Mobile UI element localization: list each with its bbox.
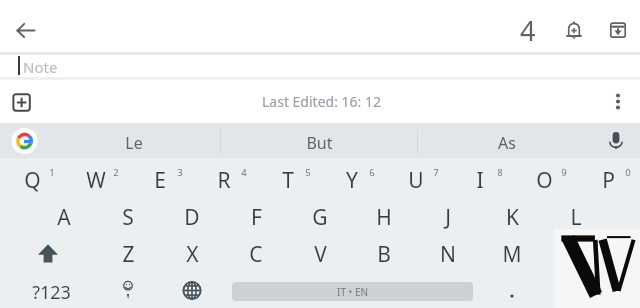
staticText: Y	[346, 166, 358, 195]
button[interactable]: Voice input	[598, 124, 634, 157]
button[interactable]: Backspace	[544, 234, 640, 271]
button[interactable]: H	[352, 197, 416, 234]
staticText: V	[314, 240, 327, 269]
button[interactable]: Add reminder	[552, 9, 596, 53]
button[interactable]: Numbers and symbols	[0, 271, 96, 308]
staticText: 7	[433, 166, 439, 179]
staticText: 4	[241, 166, 247, 179]
staticText: G	[312, 203, 328, 232]
button[interactable]: Add content	[0, 80, 44, 123]
button[interactable]: But	[221, 125, 417, 160]
button[interactable]: L	[544, 197, 608, 234]
button[interactable]: I	[448, 160, 512, 197]
button[interactable]: T	[256, 160, 320, 197]
staticText: 6	[369, 166, 375, 179]
staticText: M	[502, 240, 522, 269]
staticText: 3	[177, 166, 183, 179]
staticText: Note	[23, 57, 58, 77]
staticText: H	[376, 203, 392, 232]
staticText: U	[408, 166, 424, 195]
button[interactable]: IT • EN	[224, 271, 480, 308]
staticText: But	[306, 132, 333, 154]
staticText: 5	[305, 166, 311, 179]
button[interactable]: Last Edited: 16: 12	[60, 80, 580, 123]
button[interactable]: Q	[0, 160, 64, 197]
button[interactable]: F	[224, 197, 288, 234]
button[interactable]: Change keyboard language	[160, 271, 224, 308]
staticText: C	[249, 240, 263, 269]
button[interactable]: A	[32, 197, 96, 234]
staticText: 8	[497, 166, 503, 179]
staticText: Z	[122, 240, 135, 269]
staticText: T	[282, 166, 294, 195]
button[interactable]: G	[288, 197, 352, 234]
staticText: A	[57, 203, 71, 232]
button[interactable]: C	[224, 234, 288, 271]
button[interactable]: Google search	[8, 125, 41, 157]
staticText: 1	[49, 166, 55, 179]
staticText: 2	[113, 166, 119, 179]
button[interactable]: Le	[48, 125, 220, 160]
button[interactable]: J	[416, 197, 480, 234]
staticText: F	[251, 203, 262, 232]
staticText: R	[217, 166, 231, 195]
button[interactable]: V	[288, 234, 352, 271]
staticText: D	[184, 203, 200, 232]
button[interactable]: E	[128, 160, 192, 197]
button[interactable]: Period	[480, 271, 544, 308]
button[interactable]: U	[384, 160, 448, 197]
staticText: As	[498, 132, 516, 154]
button[interactable]: Emoji	[96, 271, 160, 308]
staticText: N	[440, 240, 456, 269]
button[interactable]: Back	[2, 7, 50, 54]
button[interactable]: Enter	[544, 271, 640, 308]
button[interactable]: Y	[320, 160, 384, 197]
staticText: S	[122, 203, 134, 232]
staticText: E	[154, 166, 166, 195]
staticText: 4	[520, 12, 536, 49]
button[interactable]: N	[416, 234, 480, 271]
staticText: I	[476, 166, 484, 195]
button[interactable]: D	[160, 197, 224, 234]
staticText: O	[536, 166, 553, 195]
button[interactable]: S	[96, 197, 160, 234]
button[interactable]: As	[418, 125, 596, 160]
button[interactable]: M	[480, 234, 544, 271]
staticText: J	[445, 203, 451, 232]
staticText: P	[602, 166, 615, 195]
staticText: W	[86, 166, 106, 195]
button[interactable]: Archive	[596, 8, 640, 52]
staticText: IT • EN	[337, 285, 369, 299]
button[interactable]: R	[192, 160, 256, 197]
button[interactable]: Z	[96, 234, 160, 271]
staticText: B	[377, 240, 391, 269]
button[interactable]: Note	[0, 54, 640, 77]
button[interactable]: W	[64, 160, 128, 197]
staticText: Last Edited: 16: 12	[262, 92, 381, 111]
button[interactable]: P	[576, 160, 640, 197]
button[interactable]: X	[160, 234, 224, 271]
staticText: Le	[125, 132, 143, 154]
staticText: ?123	[32, 280, 71, 305]
button[interactable]: O	[512, 160, 576, 197]
button[interactable]: Font size	[506, 8, 550, 52]
button[interactable]: More options	[596, 80, 640, 123]
button[interactable]: B	[352, 234, 416, 271]
staticText: L	[570, 203, 582, 232]
staticText: X	[186, 240, 199, 269]
staticText: 9	[561, 166, 567, 179]
button[interactable]: K	[480, 197, 544, 234]
staticText: K	[506, 203, 519, 232]
button[interactable]: Shift	[0, 234, 96, 271]
staticText: Q	[24, 166, 41, 195]
staticText: 0	[625, 166, 631, 179]
